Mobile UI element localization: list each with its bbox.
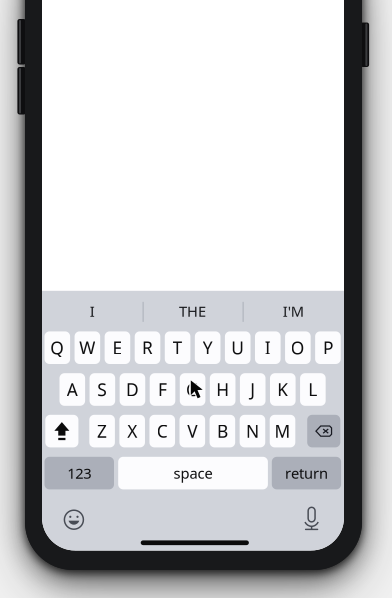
button[interactable]: space xyxy=(118,457,268,489)
button[interactable]: A xyxy=(59,373,85,406)
staticText: R xyxy=(142,336,153,359)
button[interactable]: I xyxy=(255,331,281,364)
button[interactable]: X xyxy=(119,415,145,447)
button[interactable]: Emoji xyxy=(57,503,91,537)
staticText: 123 xyxy=(67,463,91,483)
button[interactable]: I'M xyxy=(243,291,344,331)
button[interactable]: N xyxy=(240,415,265,447)
staticText: M xyxy=(274,420,290,443)
staticText: I xyxy=(265,336,271,359)
button[interactable]: L xyxy=(300,373,326,406)
staticText: B xyxy=(217,420,228,443)
button[interactable]: K xyxy=(270,373,296,406)
staticText: F xyxy=(158,378,167,401)
staticText: I xyxy=(90,301,95,321)
button[interactable]: D xyxy=(120,373,145,406)
staticText: O xyxy=(291,336,305,359)
staticText: Q xyxy=(50,336,64,359)
button[interactable]: C xyxy=(149,415,175,447)
staticText: P xyxy=(323,336,333,359)
button[interactable]: Delete xyxy=(307,415,340,447)
button[interactable]: B xyxy=(210,415,235,447)
staticText: S xyxy=(97,378,107,401)
staticText: I'M xyxy=(283,301,304,321)
button[interactable]: E xyxy=(105,331,130,364)
button[interactable]: Z xyxy=(89,415,115,447)
staticText: C xyxy=(157,420,168,443)
button[interactable]: Y xyxy=(195,331,220,364)
staticText: K xyxy=(277,378,288,401)
staticText: X xyxy=(127,420,137,443)
button[interactable]: F xyxy=(150,373,175,406)
button[interactable]: Shift xyxy=(45,415,78,447)
button[interactable]: V xyxy=(179,415,205,447)
staticText: space xyxy=(174,463,213,483)
button[interactable]: S xyxy=(90,373,115,406)
button[interactable]: W xyxy=(75,331,100,364)
staticText: L xyxy=(308,378,317,401)
button[interactable]: I xyxy=(42,291,143,331)
button[interactable]: 123 xyxy=(44,457,114,489)
staticText: T xyxy=(173,336,183,359)
button[interactable]: Dictation xyxy=(295,502,329,536)
staticText: THE xyxy=(179,301,206,321)
staticText: U xyxy=(231,336,244,359)
button[interactable]: return xyxy=(272,457,341,489)
staticText: J xyxy=(250,378,255,401)
staticText: return xyxy=(285,463,328,483)
button[interactable]: M xyxy=(270,415,295,447)
button[interactable]: H xyxy=(210,373,235,406)
button[interactable]: G xyxy=(180,373,205,406)
staticText: D xyxy=(126,378,139,401)
staticText: E xyxy=(112,336,122,359)
staticText: Y xyxy=(203,336,213,359)
button[interactable]: J xyxy=(240,373,265,406)
staticText: H xyxy=(216,378,229,401)
button[interactable]: Q xyxy=(44,331,70,364)
button[interactable]: U xyxy=(225,331,250,364)
staticText: N xyxy=(246,420,259,443)
button[interactable]: R xyxy=(135,331,160,364)
staticText: V xyxy=(187,420,197,443)
staticText: G xyxy=(186,378,199,401)
staticText: A xyxy=(67,378,78,401)
button[interactable]: P xyxy=(315,331,341,364)
button[interactable]: T xyxy=(165,331,190,364)
staticText: W xyxy=(79,336,95,359)
button[interactable]: O xyxy=(285,331,311,364)
staticText: Z xyxy=(97,420,107,443)
button[interactable]: THE xyxy=(143,291,243,331)
